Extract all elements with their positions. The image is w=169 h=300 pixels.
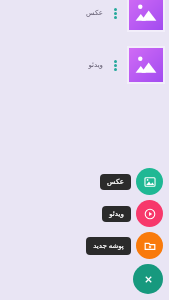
button[interactable]: ویدئو [0, 46, 169, 84]
button[interactable]: عکس [100, 168, 163, 195]
staticText: ویدئو [109, 210, 124, 218]
button[interactable]: More options [110, 3, 120, 23]
button[interactable]: Close menu [133, 264, 163, 294]
staticText: عکس [107, 178, 124, 186]
button[interactable] [129, 48, 163, 82]
staticText: عکس [86, 9, 103, 17]
staticText: ویدئو [88, 61, 103, 69]
button[interactable] [129, 0, 163, 30]
button[interactable]: پوشه جدید [86, 232, 163, 259]
button[interactable]: عکس [0, 0, 169, 32]
staticText: پوشه جدید [93, 241, 124, 251]
button[interactable]: ویدئو [102, 200, 163, 227]
button[interactable]: More options [110, 55, 120, 75]
